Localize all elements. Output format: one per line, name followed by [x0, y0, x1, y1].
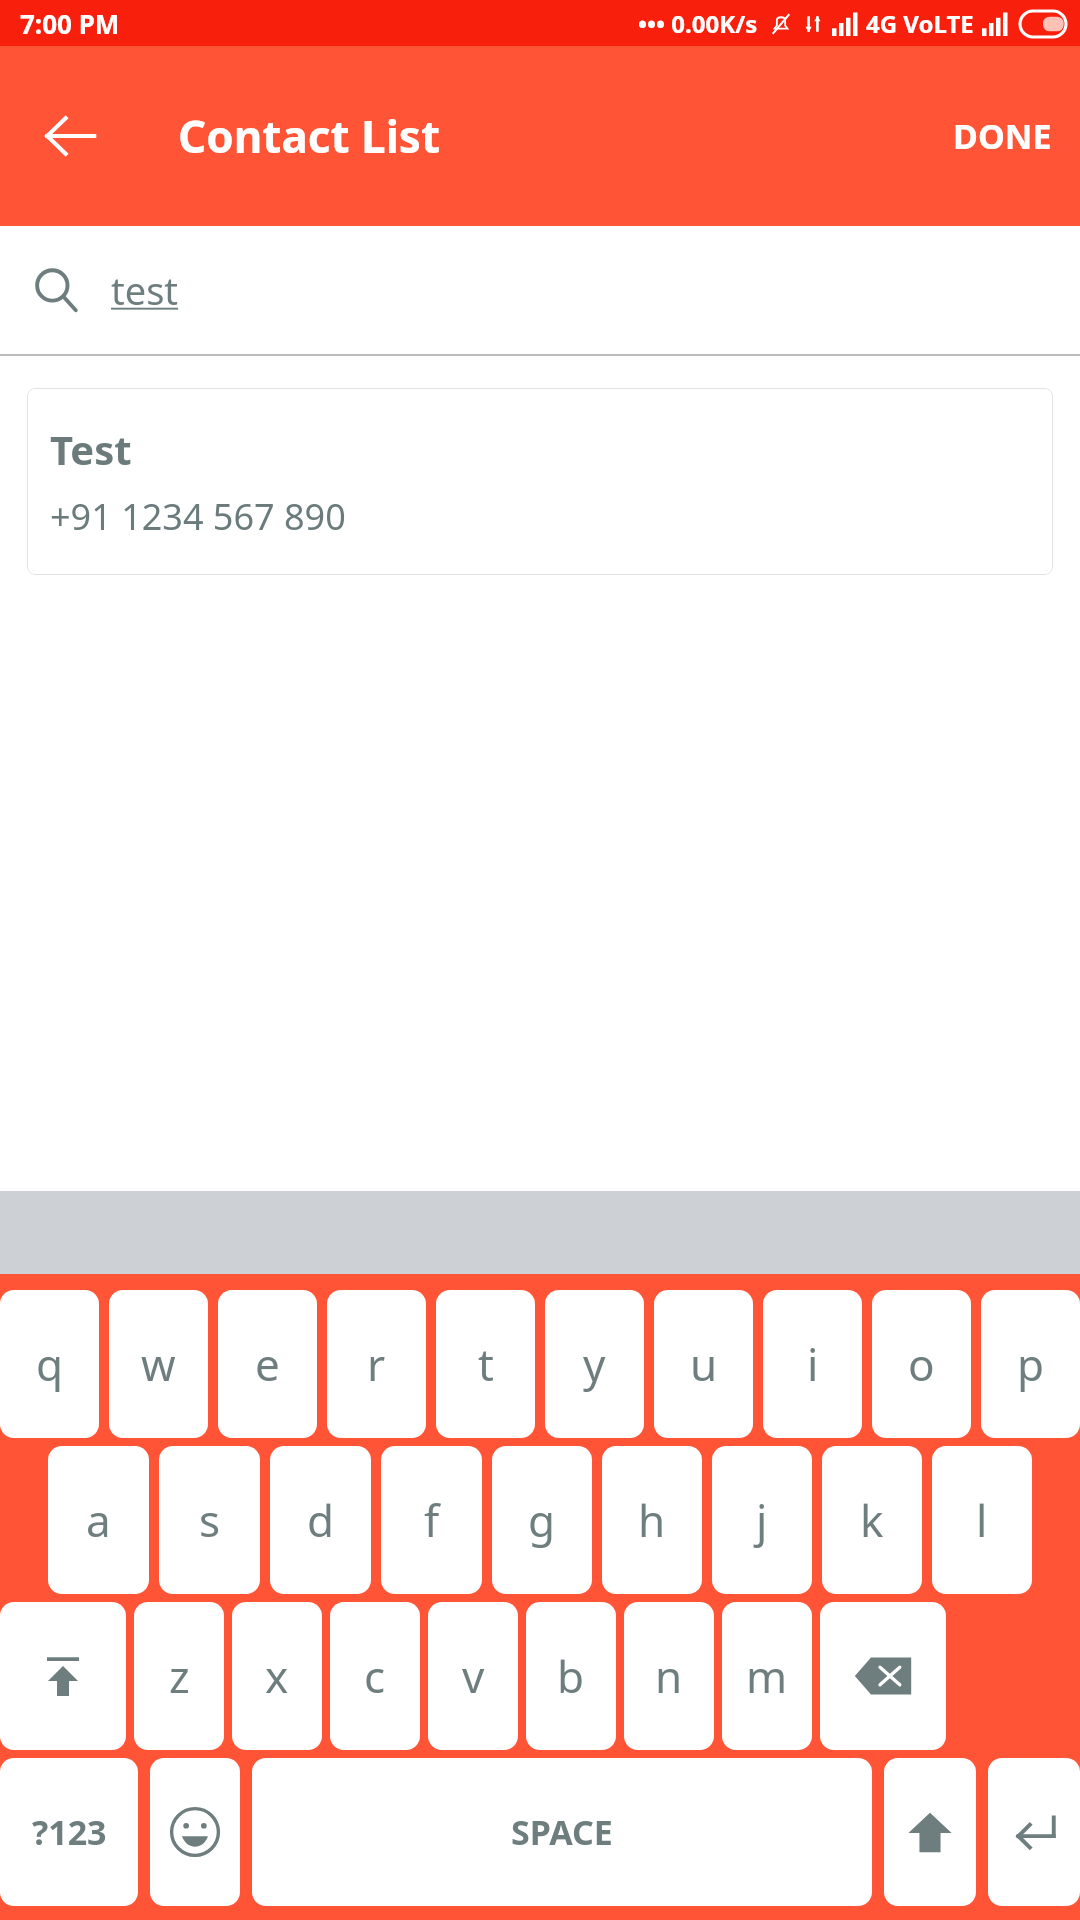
- staticText: o: [908, 1334, 935, 1394]
- button[interactable]: a: [48, 1446, 149, 1594]
- staticText: z: [169, 1646, 190, 1706]
- staticText: u: [690, 1334, 718, 1394]
- button[interactable]: v: [428, 1602, 518, 1750]
- staticText: DONE: [953, 113, 1052, 159]
- button[interactable]: Enter: [988, 1758, 1080, 1906]
- staticText: ?123: [32, 1809, 107, 1855]
- staticText: l: [976, 1490, 988, 1550]
- staticText: m: [746, 1646, 788, 1706]
- staticText: i: [807, 1334, 819, 1394]
- staticText: v: [462, 1646, 485, 1706]
- button[interactable]: z: [134, 1602, 224, 1750]
- button[interactable]: m: [722, 1602, 812, 1750]
- staticText: h: [638, 1490, 666, 1550]
- staticText: r: [367, 1334, 386, 1394]
- button[interactable]: e: [218, 1290, 317, 1438]
- button[interactable]: Emoji: [150, 1758, 240, 1906]
- button[interactable]: j: [712, 1446, 812, 1594]
- staticText: 4G VoLTE: [866, 7, 974, 40]
- button[interactable]: k: [822, 1446, 922, 1594]
- button[interactable]: o: [872, 1290, 971, 1438]
- staticText: 7:00 PM: [20, 6, 120, 41]
- staticText: c: [364, 1646, 386, 1706]
- button[interactable]: ?123: [0, 1758, 138, 1906]
- staticText: f: [424, 1490, 440, 1550]
- button[interactable]: h: [602, 1446, 702, 1594]
- button[interactable]: d: [270, 1446, 371, 1594]
- button[interactable]: l: [932, 1446, 1032, 1594]
- button[interactable]: Backspace: [820, 1602, 946, 1750]
- button[interactable]: Home: [884, 1758, 976, 1906]
- staticText: y: [583, 1334, 606, 1394]
- button[interactable]: y: [545, 1290, 644, 1438]
- staticText: s: [199, 1490, 221, 1550]
- staticText: Test: [50, 422, 132, 476]
- button[interactable]: Shift: [0, 1602, 126, 1750]
- staticText: w: [141, 1334, 176, 1394]
- staticText: p: [1017, 1334, 1045, 1394]
- button[interactable]: w: [109, 1290, 208, 1438]
- button[interactable]: q: [0, 1290, 99, 1438]
- staticText: j: [756, 1490, 768, 1550]
- button[interactable]: Test: [27, 388, 1053, 575]
- staticText: g: [528, 1490, 556, 1550]
- staticText: x: [265, 1646, 289, 1706]
- button[interactable]: u: [654, 1290, 753, 1438]
- button[interactable]: DONE: [925, 97, 1080, 175]
- staticText: n: [655, 1646, 683, 1706]
- button[interactable]: g: [492, 1446, 592, 1594]
- button[interactable]: r: [327, 1290, 426, 1438]
- staticText: SPACE: [511, 1809, 613, 1855]
- button[interactable]: f: [381, 1446, 482, 1594]
- button[interactable]: x: [232, 1602, 322, 1750]
- button[interactable]: test: [0, 226, 1080, 354]
- button[interactable]: c: [330, 1602, 420, 1750]
- staticText: t: [478, 1334, 494, 1394]
- staticText: +91 1234 567 890: [50, 492, 346, 541]
- staticText: Contact List: [178, 106, 440, 166]
- button[interactable]: s: [159, 1446, 260, 1594]
- staticText: a: [86, 1490, 111, 1550]
- staticText: k: [860, 1490, 884, 1550]
- button[interactable]: i: [763, 1290, 862, 1438]
- button[interactable]: SPACE: [252, 1758, 872, 1906]
- staticText: d: [307, 1490, 335, 1550]
- staticText: q: [36, 1334, 64, 1394]
- staticText: e: [255, 1334, 280, 1394]
- staticText: ••• 0.00K/s: [638, 7, 758, 40]
- staticText: test: [111, 264, 179, 316]
- button[interactable]: p: [981, 1290, 1080, 1438]
- button[interactable]: t: [436, 1290, 535, 1438]
- button[interactable]: b: [526, 1602, 616, 1750]
- button[interactable]: Back: [30, 96, 110, 176]
- staticText: b: [557, 1646, 585, 1706]
- button[interactable]: n: [624, 1602, 714, 1750]
